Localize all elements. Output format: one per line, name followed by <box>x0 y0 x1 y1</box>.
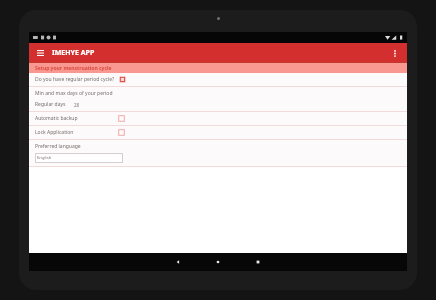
button[interactable]: Back <box>168 253 188 271</box>
staticText: Preferred language <box>35 143 81 150</box>
staticText: Setup your menstruation cycle <box>35 65 112 72</box>
button[interactable]: Home <box>208 253 228 271</box>
button[interactable]: Checked option <box>119 76 126 83</box>
staticText: Regular days <box>35 101 66 108</box>
button[interactable]: More options <box>388 46 402 60</box>
staticText: Min and max days of your period <box>35 90 113 97</box>
button[interactable]: Unchecked option <box>118 115 125 122</box>
staticText: IMEHYE APP <box>52 48 95 58</box>
button[interactable]: Min and max days of your period <box>29 87 407 111</box>
button[interactable]: Lock Application <box>29 126 407 139</box>
staticText: 28 <box>74 102 80 108</box>
button[interactable]: Do you have regular period cycle? <box>29 73 407 86</box>
button[interactable]: Preferred language <box>29 140 407 166</box>
staticText: English <box>37 155 52 161</box>
button[interactable]: Open navigation menu <box>34 47 46 59</box>
button[interactable]: Recent apps <box>248 253 268 271</box>
staticText: Automatic backup <box>35 115 78 122</box>
staticText: Lock Application <box>35 129 74 136</box>
button[interactable]: Automatic backup <box>29 112 407 125</box>
button[interactable]: Unchecked option <box>118 129 125 136</box>
staticText: Do you have regular period cycle? <box>35 76 115 83</box>
